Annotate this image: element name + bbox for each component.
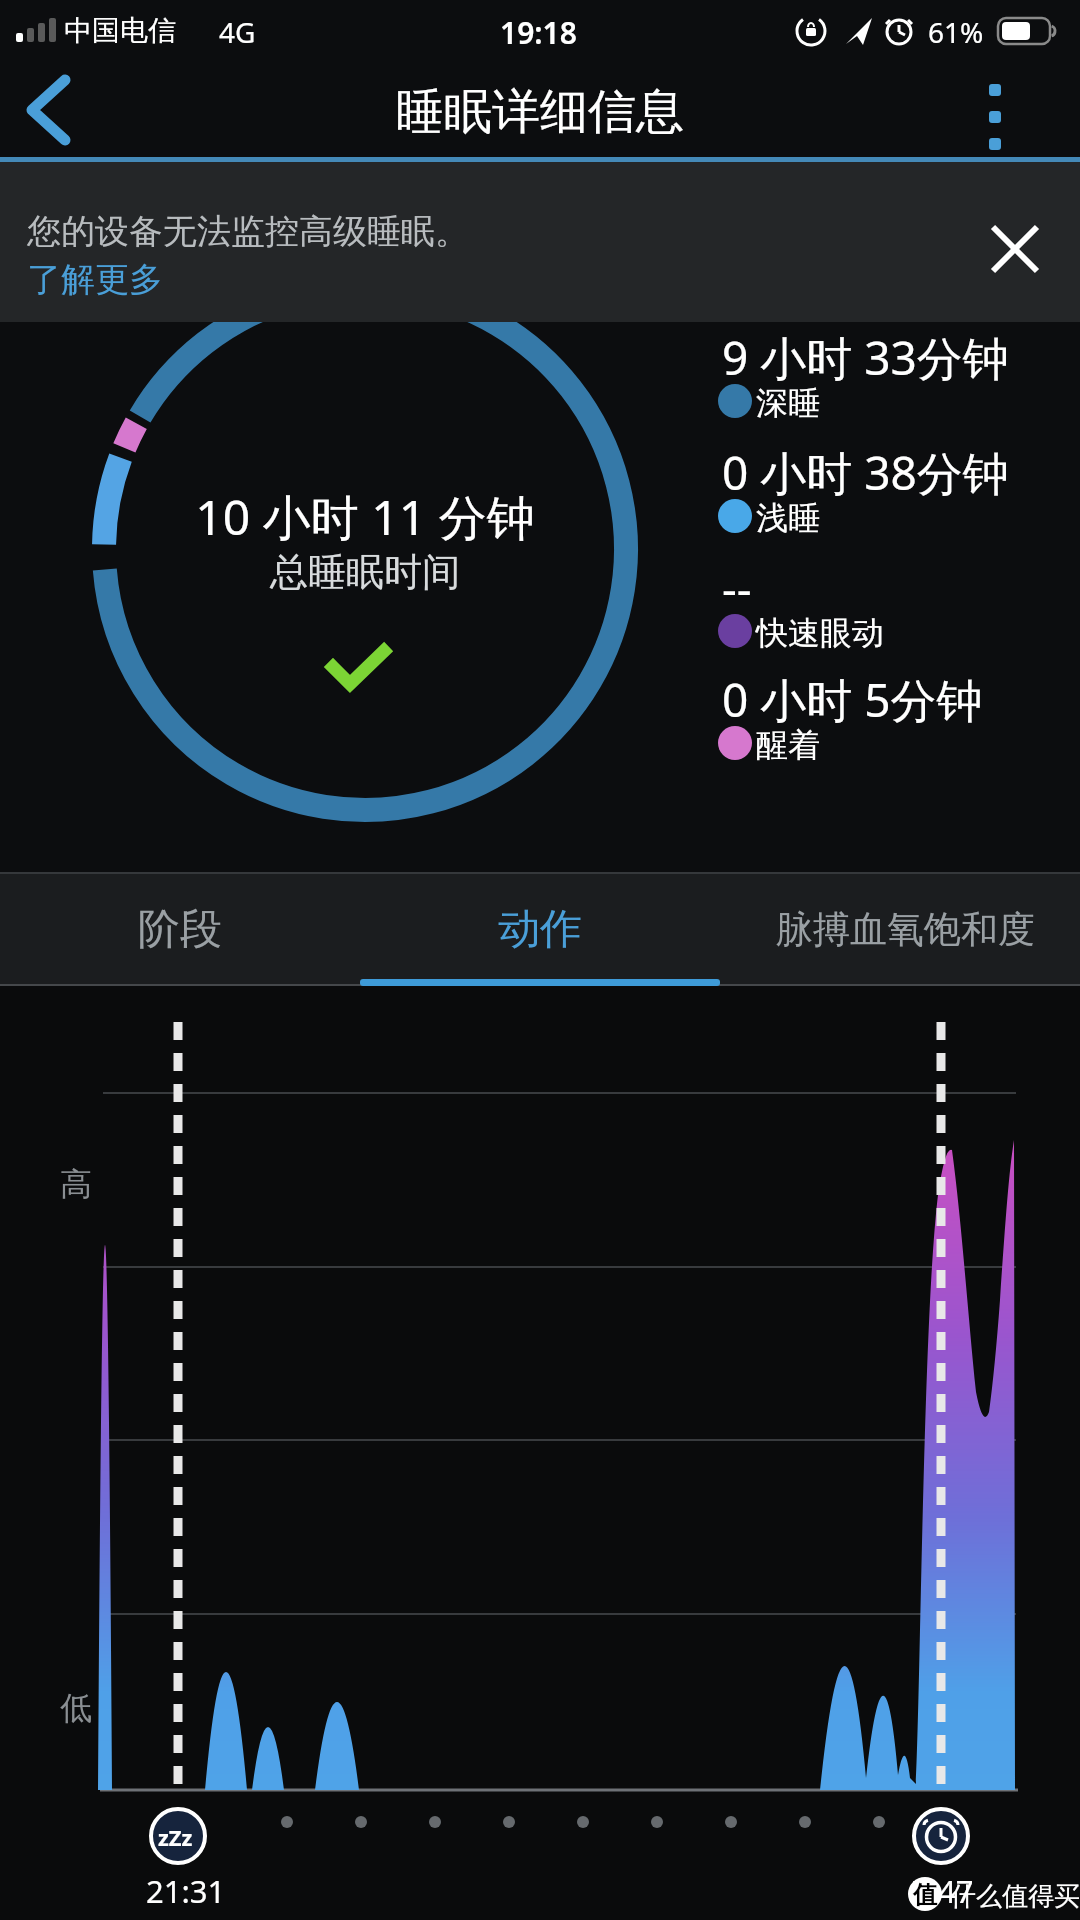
- staticText: 低: [60, 1688, 92, 1728]
- button[interactable]: [955, 68, 1035, 154]
- button[interactable]: [10, 75, 90, 145]
- staticText: 21:31: [146, 1870, 226, 1912]
- staticText: 高: [60, 1164, 92, 1204]
- staticText: 0 小时 5分钟: [722, 668, 983, 731]
- button[interactable]: 脉搏血氧饱和度: [740, 882, 1070, 977]
- staticText: 脉搏血氧饱和度: [776, 906, 1035, 953]
- staticText: 值: [908, 1880, 942, 1910]
- staticText: 19:18: [500, 12, 577, 53]
- button[interactable]: 了解更多: [27, 258, 163, 301]
- staticText: 61%: [928, 13, 984, 51]
- button[interactable]: 动作: [420, 882, 660, 977]
- staticText: 7:47: [912, 1870, 974, 1912]
- staticText: 4G: [219, 13, 256, 51]
- staticText: 9 小时 33分钟: [722, 326, 1009, 389]
- button[interactable]: 阶段: [60, 882, 300, 977]
- staticText: zZz: [158, 1822, 193, 1852]
- staticText: 动作: [498, 903, 582, 956]
- staticText: 0 小时 38分钟: [722, 441, 1009, 504]
- staticText: 总睡眠时间: [115, 548, 615, 596]
- staticText: 阶段: [138, 903, 222, 956]
- staticText: 您的设备无法监控高级睡眠。: [27, 210, 469, 253]
- button[interactable]: [975, 225, 1055, 305]
- staticText: 快速眼动: [756, 613, 884, 653]
- staticText: 中国电信: [64, 13, 176, 48]
- staticText: 浅睡: [756, 498, 820, 538]
- staticText: 10 小时 11 分钟: [115, 484, 615, 550]
- staticText: 睡眠详细信息: [0, 82, 1080, 142]
- staticText: --: [722, 556, 752, 619]
- staticText: 深睡: [756, 383, 820, 423]
- staticText: 什么值得买: [950, 1880, 1080, 1913]
- staticText: 醒着: [756, 725, 820, 765]
- staticText: 了解更多: [27, 258, 163, 301]
